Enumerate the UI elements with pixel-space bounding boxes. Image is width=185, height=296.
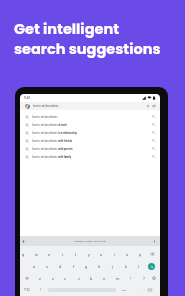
button[interactable]: Backspace <box>147 248 157 260</box>
button[interactable]: j <box>106 260 119 272</box>
button[interactable]: h <box>93 260 106 272</box>
staticText: r <box>62 252 64 257</box>
staticText: .com <box>121 289 127 292</box>
button[interactable]: Shift <box>20 272 33 284</box>
staticText: Get intelligent <box>14 19 120 39</box>
staticText: 9:41 <box>24 96 31 100</box>
button[interactable]: Clipboard <box>20 236 160 246</box>
staticText: v <box>78 276 80 281</box>
button[interactable]: i <box>108 248 121 260</box>
staticText: n <box>103 276 106 281</box>
button[interactable]: / <box>34 284 47 296</box>
staticText: s <box>46 264 49 269</box>
staticText: k <box>125 264 127 269</box>
staticText: o <box>126 252 129 257</box>
button[interactable]: b <box>85 272 98 284</box>
button[interactable]: p <box>134 248 147 260</box>
button[interactable]: t <box>69 248 82 260</box>
button[interactable]: k <box>119 260 132 272</box>
staticText: how to set boundaries at work <box>32 124 67 127</box>
staticText: w <box>35 252 38 257</box>
button[interactable]: c <box>59 272 72 284</box>
button[interactable]: y <box>82 248 95 260</box>
staticText: ? <box>143 276 145 281</box>
other: Voice search <box>146 104 150 108</box>
button[interactable]: e <box>43 248 56 260</box>
staticText: how to set boundaries with friends <box>32 140 72 143</box>
button[interactable]: g <box>80 260 93 272</box>
staticText: . <box>136 288 137 292</box>
staticText: l <box>138 264 139 269</box>
button[interactable]: a <box>28 260 41 272</box>
staticText: p <box>139 252 142 257</box>
button[interactable]: how to set boundaries <box>20 113 160 121</box>
button[interactable]: v <box>72 272 85 284</box>
staticText: u <box>100 252 103 257</box>
button[interactable]: Keyboard options <box>143 284 156 296</box>
staticText: ! <box>130 276 132 281</box>
other: Backspace <box>150 252 154 256</box>
staticText: how to set boundaries with parents <box>32 148 73 151</box>
button[interactable]: how to set boundaries <box>20 102 160 110</box>
button[interactable]: s <box>41 260 54 272</box>
other: More <box>153 240 156 243</box>
button[interactable]: ? <box>137 272 150 284</box>
staticText: b <box>90 276 93 281</box>
button[interactable]: n <box>98 272 111 284</box>
staticText: Suggest content: Tap for info <box>74 240 107 243</box>
button[interactable]: ?123 <box>20 284 34 296</box>
button[interactable]: Emoji <box>150 272 157 284</box>
staticText: j <box>112 264 113 269</box>
button[interactable]: w <box>30 248 43 260</box>
button[interactable]: .com <box>117 284 130 296</box>
button[interactable]: q <box>20 248 30 260</box>
button[interactable]: how to set boundaries with family <box>20 153 160 161</box>
staticText: f <box>73 264 75 269</box>
staticText: c <box>64 276 67 281</box>
staticText: search suggestions <box>14 39 161 59</box>
button[interactable]: ! <box>124 272 137 284</box>
staticText: t <box>75 252 77 257</box>
button[interactable]: Search <box>145 260 157 272</box>
staticText: z <box>39 276 41 281</box>
staticText: g <box>85 264 88 269</box>
button[interactable]: m <box>111 272 124 284</box>
staticText: d <box>59 264 62 269</box>
staticText: e <box>48 252 51 257</box>
staticText: how to set boundaries <box>33 105 59 108</box>
button[interactable]: how to set boundaries with parents <box>20 145 160 153</box>
staticText: how to set boundaries <box>32 116 58 119</box>
button[interactable]: o <box>121 248 134 260</box>
button[interactable]: how to set boundaries at work <box>20 121 160 129</box>
staticText: h <box>98 264 101 269</box>
button[interactable]: d <box>54 260 67 272</box>
staticText: m <box>116 276 120 281</box>
other: Google Lens <box>152 104 156 108</box>
button[interactable]: how to set boundaries with friends <box>20 137 160 145</box>
staticText: how to set boundaries with family <box>32 156 72 159</box>
staticText: how to set boundaries in a relationship <box>32 132 77 135</box>
button[interactable]: r <box>56 248 69 260</box>
button[interactable]: x <box>46 272 59 284</box>
button[interactable]: z <box>33 272 46 284</box>
staticText: ?123 <box>24 289 30 292</box>
staticText: x <box>52 276 54 281</box>
staticText: y <box>88 252 90 257</box>
staticText: i <box>114 252 115 257</box>
staticText: q <box>22 252 25 257</box>
button[interactable]: u <box>95 248 108 260</box>
staticText: / <box>40 288 42 292</box>
button[interactable]: l <box>132 260 145 272</box>
staticText: a <box>33 264 36 269</box>
button[interactable]: f <box>67 260 80 272</box>
other: Clipboard <box>22 240 25 243</box>
button[interactable]: how to set boundaries in a relationship <box>20 129 160 137</box>
